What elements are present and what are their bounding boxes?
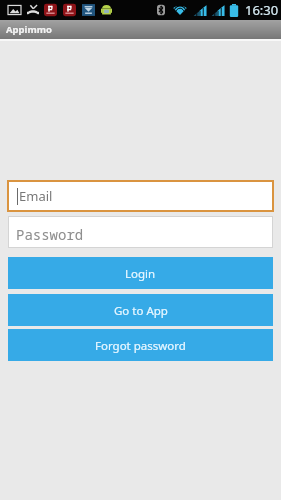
staticText: 16:30 <box>245 1 279 19</box>
button[interactable]: Login <box>8 257 273 289</box>
button[interactable]: Forgot password <box>8 329 273 361</box>
button[interactable]: Go to App <box>8 294 273 326</box>
staticText: Email <box>19 187 53 205</box>
staticText: Password <box>16 225 84 244</box>
staticText: Forgot password <box>95 338 186 354</box>
staticText: Appimmo <box>6 23 52 36</box>
staticText: Login <box>125 266 156 282</box>
staticText: Go to App <box>114 303 168 319</box>
button[interactable]: Email <box>7 180 274 212</box>
button[interactable]: Appimmo <box>0 20 281 39</box>
button[interactable]: Password <box>8 216 273 248</box>
